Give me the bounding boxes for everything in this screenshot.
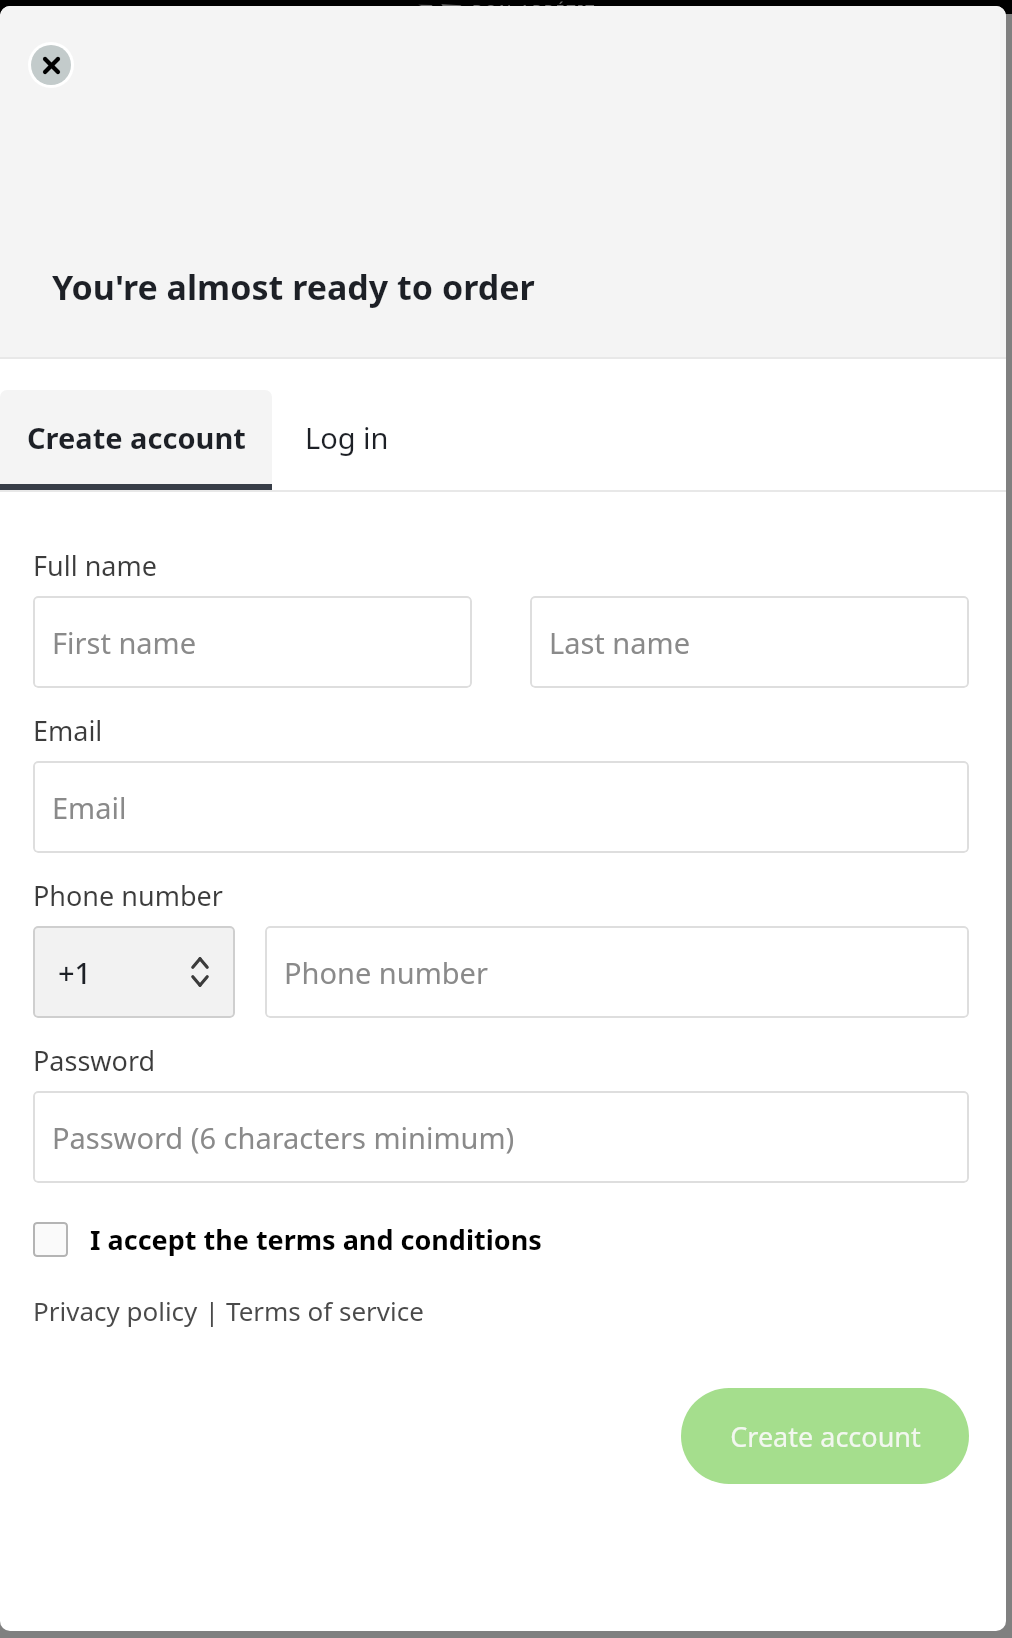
button[interactable]: Password (6 characters minimum)	[33, 1091, 969, 1183]
button[interactable]: Last name	[530, 596, 969, 688]
staticText: Password	[33, 1042, 156, 1079]
staticText: Log in	[305, 418, 389, 457]
staticText: Password (6 characters minimum)	[52, 1118, 515, 1157]
button[interactable]: Close	[31, 45, 71, 85]
staticText: Email	[52, 788, 127, 827]
staticText: BON APPÉTIT	[472, 0, 597, 14]
button[interactable]: Terms of service	[226, 1293, 424, 1328]
button[interactable]: Phone number	[265, 926, 969, 1018]
staticText: |	[198, 1293, 226, 1328]
staticText: Phone number	[284, 953, 488, 992]
staticText: Phone number	[33, 877, 223, 914]
button[interactable]: Privacy policy	[33, 1293, 198, 1328]
staticText: Email	[33, 712, 103, 749]
staticText: Last name	[549, 623, 691, 662]
button[interactable]: Log in	[272, 390, 422, 492]
button[interactable]: Email	[33, 761, 969, 853]
button[interactable]: First name	[33, 596, 472, 688]
staticText: Full name	[33, 547, 157, 584]
staticText: Create account	[730, 1418, 921, 1455]
staticText: I accept the terms and conditions	[90, 1221, 542, 1258]
staticText: +1	[58, 953, 92, 992]
staticText: You're almost ready to order	[52, 264, 535, 310]
button[interactable]: Create account	[0, 390, 272, 492]
button[interactable]: I accept the terms and conditions	[33, 1221, 542, 1258]
staticText: First name	[52, 623, 197, 662]
button[interactable]: Create account	[681, 1388, 969, 1484]
staticText: Create account	[27, 418, 246, 457]
button[interactable]: +1	[33, 926, 235, 1018]
